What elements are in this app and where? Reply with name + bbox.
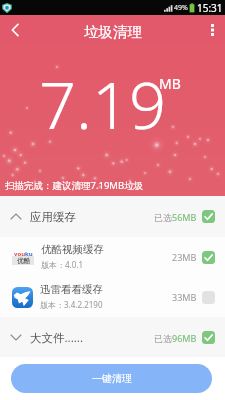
staticText: 33MB bbox=[172, 291, 197, 303]
staticText: 扫描完成：建议清理7.19MB垃圾 bbox=[5, 179, 144, 192]
staticText: 7.19 bbox=[39, 60, 167, 149]
staticText: 版本：4.0.1 bbox=[41, 259, 84, 270]
button[interactable]: Toggle selection bbox=[202, 251, 215, 264]
button[interactable]: 大文件...... bbox=[0, 317, 225, 358]
staticText: 应用缓存 bbox=[30, 210, 76, 224]
button[interactable]: youku bbox=[0, 237, 225, 277]
staticText: 已选56MB bbox=[154, 211, 197, 223]
button[interactable]: Toggle selection bbox=[202, 291, 215, 304]
staticText: 已选96MB bbox=[154, 332, 197, 344]
button[interactable]: Toggle selection bbox=[202, 331, 215, 344]
staticText: 迅雷看看缓存 bbox=[40, 283, 103, 296]
staticText: 版本：3.4.2.2190 bbox=[40, 299, 103, 310]
staticText: 15:31 bbox=[197, 1, 223, 15]
button[interactable]: 迅雷看看缓存 bbox=[0, 277, 225, 317]
staticText: 大文件...... bbox=[30, 330, 83, 346]
staticText: 优酷视频缓存 bbox=[41, 243, 104, 256]
button[interactable]: 一键清理 bbox=[11, 364, 212, 393]
staticText: 23MB bbox=[172, 251, 197, 263]
staticText: 垃圾清理 bbox=[84, 23, 142, 41]
button[interactable]: 应用缓存 bbox=[0, 196, 225, 237]
staticText: youku bbox=[14, 250, 33, 256]
button[interactable]: Back bbox=[0, 15, 30, 45]
staticText: 49% bbox=[174, 3, 188, 13]
staticText: MB bbox=[159, 74, 181, 93]
staticText: 一键清理 bbox=[92, 372, 132, 385]
button[interactable]: Toggle selection bbox=[202, 210, 215, 223]
staticText: 优酷 bbox=[17, 257, 30, 265]
button[interactable]: More options bbox=[200, 15, 225, 45]
